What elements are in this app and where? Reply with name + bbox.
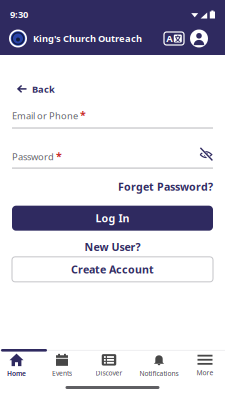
- button[interactable]: Back: [17, 83, 55, 95]
- staticText: A: [166, 32, 172, 45]
- staticText: Log In: [95, 211, 129, 225]
- staticText: 9:30: [10, 8, 28, 21]
- button[interactable]: Translate: [163, 31, 185, 46]
- staticText: King's Church Outreach: [33, 32, 142, 45]
- staticText: Email or Phone: [12, 109, 78, 122]
- button[interactable]: More: [185, 354, 225, 377]
- button[interactable]: Notifications: [133, 354, 185, 378]
- button[interactable]: Create Account: [12, 257, 213, 282]
- staticText: Discover: [95, 369, 122, 377]
- staticText: Forget Password?: [118, 179, 213, 194]
- staticText: Notifications: [139, 369, 178, 378]
- staticText: More: [196, 368, 213, 377]
- button[interactable]: Account: [185, 29, 225, 47]
- staticText: Create Account: [71, 262, 154, 276]
- button[interactable]: Events: [33, 354, 85, 378]
- staticText: Back: [32, 83, 55, 95]
- staticText: Password: [12, 150, 54, 163]
- button[interactable]: New User?: [84, 240, 140, 254]
- button[interactable]: Discover: [85, 354, 133, 377]
- staticText: *: [80, 108, 86, 122]
- staticText: New User?: [84, 240, 140, 254]
- button[interactable]: Show password: [199, 151, 213, 165]
- staticText: Home: [7, 369, 26, 378]
- button[interactable]: Forget Password?: [118, 179, 213, 194]
- staticText: *: [56, 149, 62, 163]
- button[interactable]: Home: [0, 354, 33, 378]
- button[interactable]: Log In: [12, 206, 213, 231]
- staticText: Events: [52, 369, 72, 378]
